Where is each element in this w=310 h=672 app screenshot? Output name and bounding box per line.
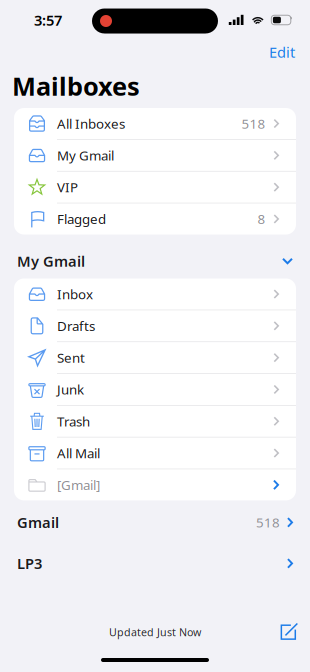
staticText: Mailboxes	[12, 69, 140, 103]
button[interactable]: Edit	[259, 39, 310, 65]
staticText: 518	[241, 115, 265, 132]
button[interactable]: LP3	[0, 544, 310, 582]
staticText: 8	[257, 210, 265, 228]
staticText: Trash	[57, 412, 90, 430]
button[interactable]: My Gmail	[14, 140, 296, 171]
staticText: My Gmail	[17, 251, 85, 271]
staticText: Drafts	[57, 317, 95, 335]
staticText: My Gmail	[57, 146, 114, 164]
staticText: All Inboxes	[57, 115, 125, 132]
button[interactable]: Junk	[14, 374, 296, 405]
button[interactable]: Sent	[14, 342, 296, 373]
button[interactable]: Drafts	[14, 310, 296, 341]
staticText: Sent	[57, 349, 85, 366]
button[interactable]: All Inboxes	[14, 108, 296, 139]
button[interactable]: Trash	[14, 406, 296, 437]
button[interactable]: VIP	[14, 172, 296, 203]
button[interactable]: Compose	[270, 617, 310, 646]
staticText: Updated Just Now	[109, 625, 201, 639]
button[interactable]: All Mail	[14, 437, 296, 469]
staticText: Inbox	[57, 285, 93, 303]
button[interactable]: Gmail	[0, 500, 310, 544]
staticText: Flagged	[57, 210, 106, 228]
staticText: LP3	[17, 554, 42, 573]
staticText: 3:57	[34, 10, 62, 30]
staticText: 518	[256, 513, 280, 531]
staticText: Edit	[269, 42, 295, 62]
staticText: [Gmail]	[57, 476, 100, 494]
button[interactable]: My Gmail	[0, 234, 310, 278]
staticText: Junk	[57, 381, 84, 398]
button[interactable]: [Gmail]	[14, 469, 296, 500]
button[interactable]: Inbox	[14, 278, 296, 310]
staticText: Gmail	[17, 513, 59, 532]
button[interactable]: Flagged	[14, 203, 296, 234]
staticText: VIP	[57, 178, 78, 196]
staticText: All Mail	[57, 444, 100, 462]
